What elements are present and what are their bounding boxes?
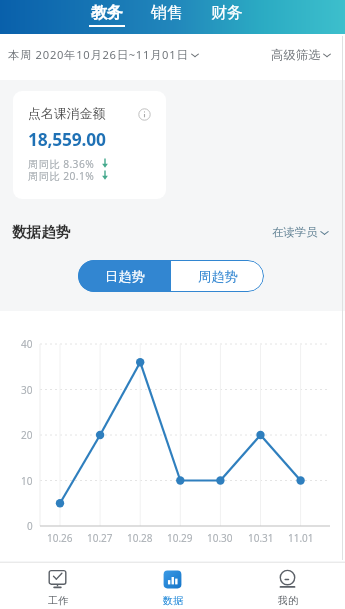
button[interactable]: 销售 bbox=[149, 0, 185, 27]
staticText: 销售 bbox=[151, 3, 183, 23]
staticText: 财务 bbox=[211, 3, 243, 23]
staticText: 本周 2020年10月26日~11月01日 bbox=[8, 47, 189, 62]
button[interactable]: 我的 bbox=[230, 563, 345, 609]
staticText: 30 bbox=[21, 383, 33, 397]
button[interactable]: 日趋势 bbox=[78, 260, 171, 292]
other: Info bbox=[138, 108, 151, 121]
button[interactable]: 高级筛选 bbox=[271, 47, 333, 62]
button[interactable]: 周趋势 bbox=[171, 260, 264, 292]
button[interactable]: 财务 bbox=[209, 0, 245, 27]
staticText: 10.30 bbox=[207, 531, 233, 545]
staticText: 在读学员 bbox=[272, 225, 318, 239]
staticText: 10.28 bbox=[127, 531, 153, 545]
staticText: 日趋势 bbox=[105, 268, 145, 285]
button[interactable]: 点名课消金额 bbox=[13, 91, 166, 199]
staticText: 周趋势 bbox=[198, 268, 238, 285]
staticText: 点名课消金额 bbox=[28, 106, 106, 122]
staticText: 10.29 bbox=[167, 531, 193, 545]
staticText: 教务 bbox=[91, 3, 123, 23]
staticText: 10.26 bbox=[47, 531, 73, 545]
staticText: 工作 bbox=[48, 594, 68, 607]
staticText: 周同比 8.36% bbox=[28, 157, 95, 169]
staticText: 我的 bbox=[278, 594, 298, 607]
staticText: 周同比 20.1% bbox=[28, 169, 95, 181]
button[interactable]: 本周 2020年10月26日~11月01日 bbox=[8, 47, 201, 62]
button[interactable]: 数据 bbox=[115, 563, 230, 609]
staticText: 10.31 bbox=[248, 531, 274, 545]
staticText: 数据趋势 bbox=[12, 223, 71, 241]
staticText: 10.27 bbox=[87, 531, 113, 545]
staticText: 20 bbox=[21, 428, 33, 442]
staticText: 数据 bbox=[163, 594, 183, 607]
staticText: 10 bbox=[21, 474, 33, 488]
button[interactable]: 教务 bbox=[89, 0, 125, 27]
staticText: 18,559.00 bbox=[28, 127, 106, 151]
staticText: 0 bbox=[27, 519, 33, 533]
staticText: 40 bbox=[21, 337, 33, 351]
button[interactable]: 工作 bbox=[0, 563, 115, 609]
staticText: 高级筛选 bbox=[271, 47, 321, 62]
staticText: 11.01 bbox=[288, 531, 314, 545]
button[interactable]: 在读学员 bbox=[272, 221, 331, 243]
